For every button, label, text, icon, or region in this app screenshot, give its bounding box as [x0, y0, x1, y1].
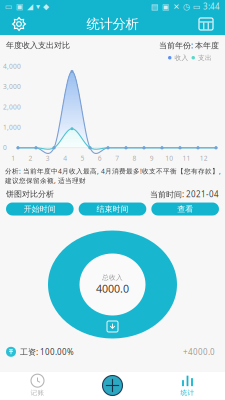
staticText: 当前时间: 2021-04: [150, 189, 219, 199]
staticText: 5: [80, 154, 84, 163]
staticText: 统计分析: [86, 16, 138, 32]
staticText: 总收入: [102, 273, 123, 281]
staticText: 10: [165, 154, 173, 163]
staticText: 开始时间: [24, 204, 56, 214]
staticText: 11: [182, 154, 190, 163]
staticText: 分析: 当前年度中4月收入最高, 4月消费最多!收支不平衡【您有存款】,: [5, 167, 221, 176]
staticText: ▤ ▣ ✕ ◷ ▭ 3:44: [151, 1, 220, 12]
staticText: 4: [63, 154, 67, 163]
staticText: 6: [98, 154, 102, 163]
staticText: 支出: [198, 54, 212, 62]
button[interactable]: 查看: [151, 202, 219, 215]
staticText: 结束时间: [96, 204, 128, 214]
staticText: 7: [115, 154, 119, 163]
staticText: 2: [28, 154, 32, 163]
staticText: ▭ ▣ ◢ ▾ ◆: [5, 2, 49, 11]
staticText: 当前年份: 本年度: [159, 40, 219, 51]
button[interactable]: 统计: [150, 371, 225, 400]
staticText: 1: [11, 154, 15, 163]
staticText: +4000.0: [183, 346, 215, 357]
staticText: 工资: 100.00%: [20, 346, 74, 357]
staticText: 建议您保留余额, 适当理财: [5, 176, 86, 185]
staticText: 3: [46, 154, 50, 163]
staticText: 年度收入支出对比: [6, 40, 70, 50]
button[interactable]: Save chart: [107, 321, 118, 332]
staticText: 4,000: [3, 62, 21, 71]
staticText: 收入: [174, 54, 188, 62]
button[interactable]: 记账: [0, 371, 75, 400]
staticText: 查看: [177, 204, 193, 214]
button[interactable]: Add record: [75, 371, 150, 400]
staticText: 4000.0: [96, 281, 129, 296]
staticText: 12: [200, 154, 208, 163]
button[interactable]: 开始时间: [6, 202, 74, 215]
button[interactable]: Settings: [5, 13, 33, 35]
staticText: 记账: [30, 389, 44, 397]
staticText: 9: [150, 154, 154, 163]
staticText: 8: [132, 154, 136, 163]
staticText: 0: [3, 143, 7, 152]
staticText: 饼图对比分析: [6, 189, 54, 199]
staticText: 1,000: [3, 123, 21, 132]
staticText: 3,000: [3, 82, 21, 91]
button[interactable]: 结束时间: [79, 202, 146, 215]
staticText: 统计: [180, 389, 194, 397]
staticText: 2,000: [3, 102, 21, 111]
button[interactable]: Calendar: [192, 13, 220, 35]
